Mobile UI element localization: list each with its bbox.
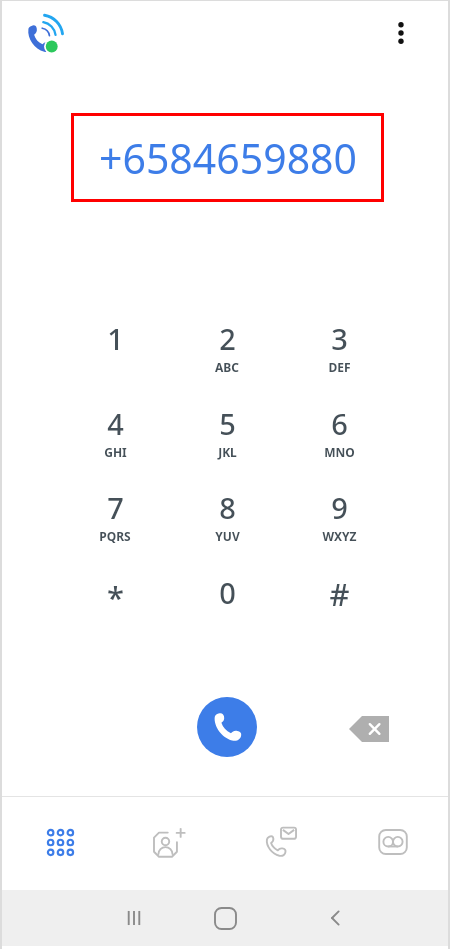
staticText: 9 <box>331 488 348 527</box>
staticText: 3 <box>331 319 348 358</box>
staticText: 0 <box>219 573 236 612</box>
staticText: 8 <box>219 488 236 527</box>
button[interactable]: Home <box>197 890 253 946</box>
button[interactable]: Recents <box>106 890 162 946</box>
button[interactable]: 6 <box>299 404 379 468</box>
button[interactable]: 5 <box>187 404 267 468</box>
button[interactable]: Messages <box>253 814 309 870</box>
staticText: 1 <box>107 319 124 358</box>
button[interactable]: Back <box>308 890 364 946</box>
staticText: 4 <box>107 404 124 443</box>
button[interactable]: 1 <box>75 319 155 383</box>
button[interactable]: +6584659880 <box>71 113 384 202</box>
button[interactable]: 4 <box>75 404 155 468</box>
button[interactable]: 8 <box>187 488 267 552</box>
button[interactable]: 9 <box>299 488 379 552</box>
staticText: 2 <box>219 319 236 358</box>
staticText: MNO <box>324 444 355 460</box>
button[interactable]: Call <box>197 697 257 757</box>
button[interactable]: Voicemail <box>365 814 421 870</box>
button[interactable]: 0 <box>187 573 267 637</box>
button[interactable]: * <box>75 576 155 640</box>
staticText: +6584659880 <box>99 130 357 186</box>
button[interactable]: 7 <box>75 488 155 552</box>
button[interactable]: 2 <box>187 319 267 383</box>
button[interactable]: Add contact <box>141 814 197 870</box>
staticText: 5 <box>219 404 236 443</box>
staticText: * <box>107 576 124 618</box>
staticText: JKL <box>218 444 237 460</box>
staticText: ABC <box>215 359 239 375</box>
staticText: # <box>329 573 350 615</box>
staticText: PQRS <box>99 528 131 544</box>
button[interactable]: Keypad <box>32 814 88 870</box>
staticText: DEF <box>328 359 351 375</box>
button[interactable]: 3 <box>299 319 379 383</box>
staticText: WXYZ <box>322 528 357 544</box>
staticText: YUV <box>215 528 240 544</box>
staticText: GHI <box>104 444 127 460</box>
button[interactable]: More options <box>380 12 422 54</box>
button[interactable]: Caller ID <box>24 14 68 58</box>
staticText: 6 <box>331 404 348 443</box>
button[interactable]: Backspace <box>342 707 396 751</box>
button[interactable]: # <box>299 573 379 637</box>
staticText: 7 <box>107 488 124 527</box>
